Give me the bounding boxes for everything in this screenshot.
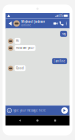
button[interactable]: More options [64,18,68,28]
staticText: I am fine [54,59,66,63]
button[interactable]: Home [34,117,41,124]
staticText: 4G [59,14,63,17]
button[interactable]: Video call [52,18,58,28]
staticText: Hi [16,39,19,43]
staticText: Michael Jackson [21,20,45,23]
staticText: Type your message here [13,109,46,112]
button[interactable]: Voice call [58,18,64,28]
button[interactable]: Back [17,117,23,124]
button[interactable]: Recent apps [52,117,58,124]
button[interactable]: Michael Jackson [13,18,45,28]
staticText: How are you? [16,46,34,50]
button[interactable]: Back [7,18,13,28]
staticText: Hey [62,32,66,36]
button[interactable]: Send [61,107,68,114]
staticText: online [21,24,31,27]
button[interactable]: Emoji [7,108,11,113]
staticText: Good [16,66,24,70]
